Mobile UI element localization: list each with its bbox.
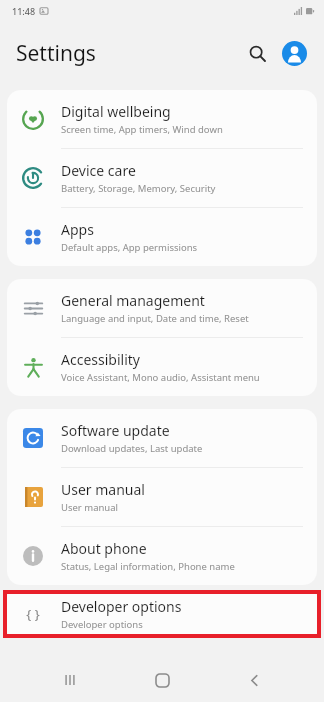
button[interactable]: Software update [7, 409, 317, 467]
button[interactable]: About phone [7, 527, 317, 585]
button[interactable]: Device care [7, 149, 317, 207]
staticText: Default apps, App permissions [61, 241, 198, 254]
staticText: Developer options [61, 618, 143, 631]
staticText: Apps [61, 220, 94, 239]
staticText: Voice Assistant, Mono audio, Assistant m… [61, 371, 260, 384]
button[interactable]: Account [278, 37, 310, 69]
button[interactable]: Home [140, 658, 184, 702]
staticText: Developer options [61, 597, 182, 616]
staticText: Digital wellbeing [61, 102, 171, 121]
staticText: Device care [61, 161, 136, 180]
staticText: Software update [61, 421, 170, 440]
staticText: Download updates, Last update [61, 442, 203, 455]
button[interactable]: Search [240, 36, 274, 70]
button[interactable]: General management [7, 279, 317, 337]
button[interactable]: Apps [7, 208, 317, 266]
staticText: User manual [61, 501, 118, 514]
button[interactable]: { } [7, 594, 317, 634]
staticText: User manual [61, 480, 145, 499]
staticText: Language and input, Date and time, Reset [61, 312, 249, 325]
staticText: Battery, Storage, Memory, Security [61, 182, 216, 195]
staticText: General management [61, 291, 205, 310]
staticText: 11:48 [12, 5, 36, 17]
button[interactable]: Accessibility [7, 338, 317, 396]
button[interactable]: User manual [7, 468, 317, 526]
staticText: About phone [61, 539, 147, 558]
button[interactable]: Recents [48, 658, 92, 702]
staticText: Status, Legal information, Phone name [61, 560, 235, 573]
button[interactable]: Back [232, 658, 276, 702]
staticText: { } [26, 605, 40, 623]
staticText: Accessibility [61, 350, 140, 369]
staticText: Settings [16, 39, 96, 68]
button[interactable]: Digital wellbeing [7, 90, 317, 148]
staticText: Screen time, App timers, Wind down [61, 123, 223, 136]
